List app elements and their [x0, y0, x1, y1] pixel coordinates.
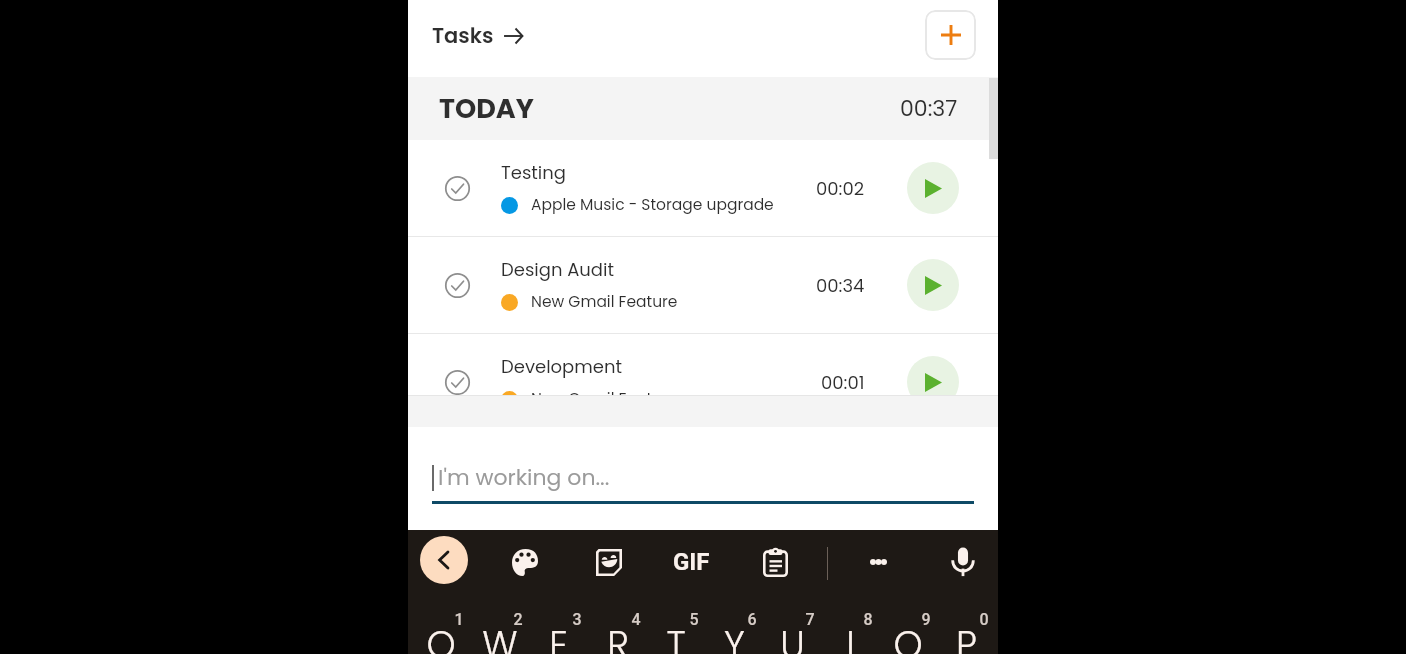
staticText: 00:01 [821, 370, 865, 395]
button[interactable]: Start timer [907, 162, 959, 214]
button[interactable]: Y [705, 619, 763, 654]
button[interactable]: GIF [667, 538, 715, 586]
button[interactable]: Q [411, 619, 470, 654]
button[interactable]: Development [408, 334, 998, 395]
staticText: GIF [673, 548, 710, 576]
staticText: 5 [689, 610, 699, 629]
button[interactable]: Voice input [939, 538, 987, 586]
staticText: Y [724, 619, 745, 654]
button[interactable]: E [529, 619, 588, 654]
staticText: E [549, 619, 568, 654]
staticText: W [482, 619, 518, 654]
button[interactable]: More options [854, 538, 902, 586]
staticText: 00:02 [816, 176, 865, 201]
button[interactable]: Design Audit [408, 237, 998, 333]
button[interactable]: O [879, 619, 937, 654]
button[interactable]: Theme [501, 538, 549, 586]
staticText: 1 [454, 610, 464, 629]
staticText: Design Audit [501, 257, 615, 282]
staticText: T [666, 619, 686, 654]
staticText: I'm working on... [438, 462, 610, 493]
staticText: R [607, 619, 629, 654]
button[interactable]: Start timer [907, 356, 959, 395]
button[interactable]: Start timer [907, 259, 959, 311]
button[interactable]: T [647, 619, 705, 654]
staticText: 0 [979, 610, 989, 629]
staticText: Q [426, 619, 456, 654]
staticText: New Gmail Feature [531, 388, 678, 395]
staticText: U [780, 619, 805, 654]
staticText: TODAY [439, 90, 534, 128]
button[interactable]: I [821, 619, 879, 654]
button[interactable]: R [588, 619, 647, 654]
staticText: I [846, 619, 855, 654]
staticText: 4 [631, 610, 641, 629]
button[interactable]: W [470, 619, 529, 654]
button[interactable]: Testing [408, 140, 998, 236]
button[interactable]: Tasks [432, 21, 531, 50]
staticText: Development [501, 354, 623, 379]
staticText: O [893, 619, 923, 654]
staticText: Apple Music - Storage upgrade [531, 194, 774, 216]
button[interactable]: Add task [925, 10, 976, 60]
staticText: Tasks [432, 21, 494, 50]
staticText: P [956, 619, 977, 654]
staticText: 7 [805, 610, 815, 629]
staticText: 9 [921, 610, 931, 629]
staticText: 3 [572, 610, 582, 629]
staticText: Testing [501, 160, 566, 185]
staticText: 6 [747, 610, 757, 629]
staticText: 8 [863, 610, 873, 629]
button[interactable]: Stickers [585, 538, 633, 586]
button[interactable]: U [763, 619, 821, 654]
staticText: New Gmail Feature [531, 291, 678, 313]
staticText: 2 [513, 610, 523, 629]
button[interactable]: Clipboard [751, 538, 799, 586]
button[interactable]: Back [420, 536, 468, 584]
staticText: 00:37 [900, 93, 958, 124]
button[interactable]: P [937, 619, 995, 654]
staticText: 00:34 [816, 273, 865, 298]
